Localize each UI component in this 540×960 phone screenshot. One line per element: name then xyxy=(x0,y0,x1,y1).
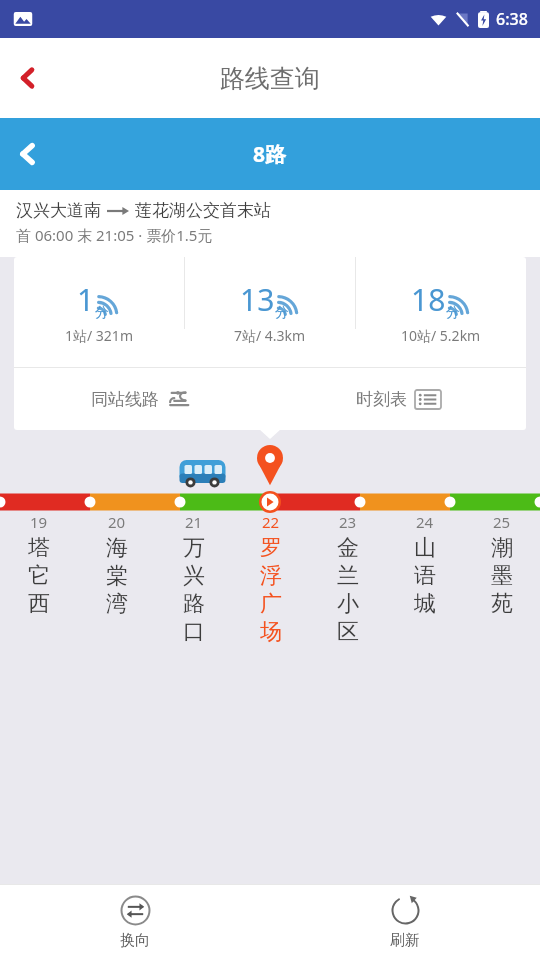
staticText: 刷新 xyxy=(390,931,420,950)
staticText: 场 xyxy=(260,618,282,646)
staticText: 棠 xyxy=(106,562,128,590)
staticText: 海 xyxy=(106,534,128,562)
staticText: 广 xyxy=(260,590,282,618)
staticText: 21 xyxy=(185,512,203,532)
staticText: 兴 xyxy=(183,562,205,590)
button[interactable]: 13 xyxy=(185,257,355,367)
button[interactable]: 19 xyxy=(0,512,78,618)
button[interactable]: 24 xyxy=(386,512,463,618)
staticText: 城 xyxy=(414,590,436,618)
staticText: 它 xyxy=(28,562,50,590)
staticText: 24 xyxy=(416,512,434,532)
button[interactable]: 刷新 xyxy=(270,884,540,960)
button[interactable]: Back xyxy=(0,50,56,106)
staticText: 1 xyxy=(77,279,95,320)
staticText: 罗 xyxy=(260,534,282,562)
staticText: 分 xyxy=(95,304,109,322)
button[interactable]: 20 xyxy=(78,512,155,618)
button[interactable]: 同站线路 xyxy=(14,368,270,430)
staticText: 13 xyxy=(240,279,275,320)
staticText: 分 xyxy=(446,304,460,322)
staticText: 25 xyxy=(493,512,511,532)
staticText: 莲花湖公交首末站 xyxy=(135,200,271,221)
button[interactable]: 22 xyxy=(232,512,309,646)
staticText: 换向 xyxy=(120,931,150,950)
staticText: 塔 xyxy=(28,534,50,562)
staticText: 23 xyxy=(339,512,357,532)
staticText: 万 xyxy=(183,534,205,562)
staticText: 小 xyxy=(337,590,359,618)
staticText: 口 xyxy=(183,618,205,646)
staticText: 苑 xyxy=(491,590,513,618)
button[interactable]: 23 xyxy=(309,512,386,646)
button[interactable]: 1 xyxy=(14,257,184,367)
staticText: 1站/ 321m xyxy=(65,326,133,345)
button[interactable]: Back xyxy=(0,126,56,182)
staticText: 19 xyxy=(30,512,48,532)
staticText: 金 xyxy=(337,534,359,562)
staticText: 同站线路 xyxy=(91,389,159,410)
staticText: 潮 xyxy=(491,534,513,562)
staticText: 分 xyxy=(275,304,289,322)
staticText: 时刻表 xyxy=(356,389,407,410)
staticText: 语 xyxy=(414,562,436,590)
staticText: 墨 xyxy=(491,562,513,590)
staticText: 兰 xyxy=(337,562,359,590)
staticText: 10站/ 5.2km xyxy=(401,326,481,345)
staticText: 汉兴大道南 xyxy=(16,200,101,221)
staticText: 18 xyxy=(411,279,446,320)
staticText: 路线查询 xyxy=(220,63,320,94)
staticText: 6:38 xyxy=(496,8,528,30)
staticText: 西 xyxy=(28,590,50,618)
staticText: 路 xyxy=(183,590,205,618)
button[interactable]: 21 xyxy=(155,512,232,646)
button[interactable]: 换向 xyxy=(0,884,270,960)
staticText: 山 xyxy=(414,534,436,562)
staticText: 湾 xyxy=(106,590,128,618)
button[interactable]: 25 xyxy=(463,512,540,618)
staticText: 20 xyxy=(108,512,126,532)
button[interactable]: 时刻表 xyxy=(270,368,526,430)
staticText: 首 06:00 末 21:05 · 票价1.5元 xyxy=(16,225,213,245)
staticText: 浮 xyxy=(260,562,282,590)
staticText: 22 xyxy=(262,512,280,532)
staticText: 区 xyxy=(337,618,359,646)
button[interactable]: 18 xyxy=(356,257,526,367)
staticText: 8路 xyxy=(253,140,287,169)
staticText: 7站/ 4.3km xyxy=(234,326,306,345)
